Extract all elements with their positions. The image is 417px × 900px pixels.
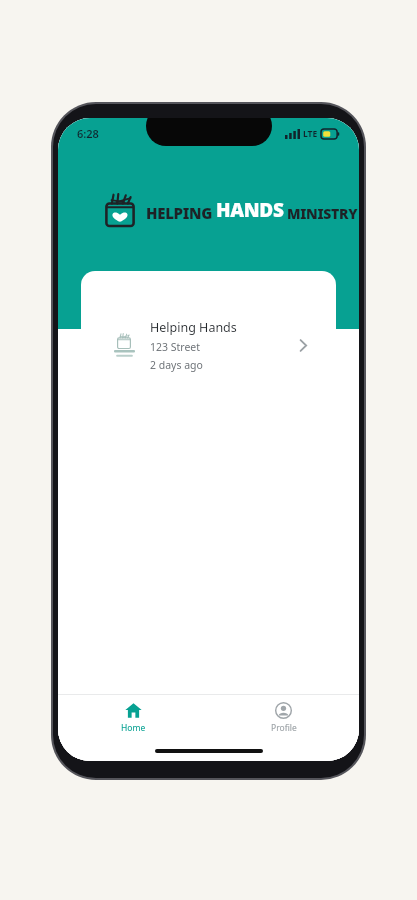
staticText: MINISTRY bbox=[287, 204, 358, 223]
staticText: LTE bbox=[303, 128, 318, 140]
staticText: Helping Hands bbox=[150, 319, 237, 336]
staticText: HANDS bbox=[216, 197, 284, 223]
staticText: 123 Street bbox=[150, 340, 201, 354]
staticText: Home bbox=[121, 722, 146, 734]
other: Open details bbox=[293, 335, 313, 355]
button[interactable]: Profile bbox=[208, 695, 359, 740]
staticText: 2 days ago bbox=[150, 358, 203, 372]
staticText: 6:28 bbox=[77, 126, 99, 141]
button[interactable]: Home bbox=[58, 695, 208, 740]
staticText: Profile bbox=[271, 722, 297, 734]
staticText: HELPING bbox=[146, 203, 213, 223]
button[interactable]: Helping Hands bbox=[98, 300, 326, 390]
